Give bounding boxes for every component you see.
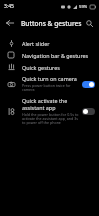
staticText: 3:45 (4, 3, 14, 10)
button[interactable]: Alert slider (0, 37, 99, 49)
staticText: Press power button twice for camera (22, 83, 80, 93)
staticText: Alert slider (22, 40, 50, 47)
button[interactable]: Search (81, 15, 97, 31)
staticText: Hold the power button for 0.5s to activa… (22, 112, 80, 126)
button[interactable]: Toggle off (82, 108, 95, 115)
button[interactable]: Quick gestures (0, 61, 99, 73)
button[interactable]: Back (2, 15, 18, 31)
button[interactable]: Quick turn on camera (0, 74, 99, 94)
staticText: Navigation bar & gestures (22, 52, 89, 59)
staticText: 59% (79, 4, 88, 10)
button[interactable]: Navigation bar & gestures (0, 49, 99, 61)
staticText: Buttons & gestures (21, 19, 82, 28)
staticText: Quick activate the assistant app (22, 97, 80, 111)
staticText: Quick turn on camera (22, 75, 77, 82)
button[interactable]: Quick activate the assistant app (0, 96, 99, 127)
button[interactable]: Toggle on (82, 81, 95, 88)
staticText: Quick gestures (22, 64, 60, 71)
